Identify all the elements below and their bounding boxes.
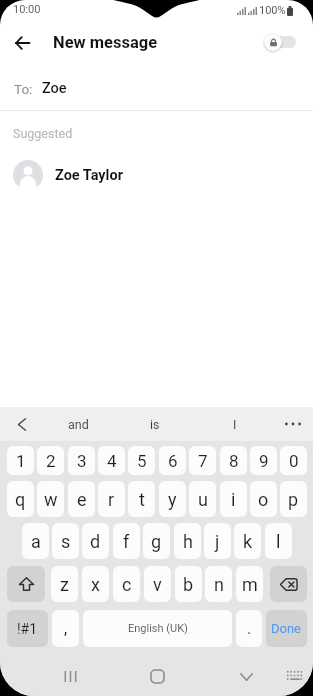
staticText: t [139, 489, 145, 510]
button[interactable]: u [189, 481, 216, 517]
button[interactable]: w [37, 481, 64, 517]
staticText: 2 [46, 451, 56, 471]
button[interactable]: Symbols [7, 610, 48, 647]
button[interactable]: To: [0, 66, 313, 111]
button[interactable]: 5 [128, 446, 155, 475]
staticText: 3 [77, 451, 87, 471]
staticText: s [61, 531, 71, 552]
button[interactable]: e [68, 481, 95, 517]
staticText: I [233, 417, 237, 432]
staticText: m [242, 574, 258, 595]
button[interactable]: 6 [159, 446, 186, 475]
button[interactable]: 3 [68, 446, 95, 475]
button[interactable]: n [205, 566, 232, 602]
button[interactable]: x [82, 566, 109, 602]
button[interactable]: Encryption toggle [263, 32, 297, 52]
staticText: l [276, 531, 281, 552]
button[interactable]: Shift [7, 566, 45, 602]
button[interactable]: p [280, 481, 307, 517]
button[interactable]: Zoe Taylor [0, 155, 313, 195]
button[interactable]: y [159, 481, 186, 517]
staticText: To: [14, 81, 33, 97]
staticText: 4 [107, 451, 117, 471]
staticText: , [64, 619, 68, 638]
button[interactable]: t [128, 481, 155, 517]
button[interactable]: d [82, 523, 109, 559]
staticText: v [153, 574, 162, 595]
staticText: q [15, 489, 26, 510]
button[interactable]: r [98, 481, 125, 517]
staticText: p [288, 489, 299, 510]
staticText: f [123, 531, 130, 552]
staticText: e [77, 489, 87, 510]
button[interactable]: g [143, 523, 170, 559]
button[interactable]: 8 [220, 446, 247, 475]
button[interactable]: More options [281, 412, 305, 436]
staticText: b [183, 574, 194, 595]
staticText: a [31, 531, 41, 552]
staticText: New message [53, 33, 158, 52]
button[interactable]: a [22, 523, 49, 559]
staticText: 5 [137, 451, 147, 471]
button[interactable]: v [144, 566, 171, 602]
staticText: is [150, 417, 160, 432]
staticText: j [215, 531, 220, 552]
button[interactable]: o [250, 481, 277, 517]
button[interactable]: j [204, 523, 231, 559]
staticText: z [60, 574, 69, 595]
button[interactable]: Home [139, 655, 175, 696]
staticText: 6 [168, 451, 178, 471]
button[interactable]: z [51, 566, 78, 602]
button[interactable]: 4 [98, 446, 125, 475]
staticText: 9 [259, 451, 269, 471]
button[interactable]: . [236, 610, 262, 647]
staticText: 7 [198, 451, 208, 471]
button[interactable]: Space [83, 610, 232, 647]
staticText: h [183, 531, 193, 552]
staticText: 1 [16, 451, 26, 471]
button[interactable]: 7 [189, 446, 216, 475]
staticText: and [68, 417, 89, 432]
button[interactable]: q [7, 481, 34, 517]
staticText: . [247, 619, 252, 638]
button[interactable]: s [52, 523, 79, 559]
button[interactable]: Hide keyboard [228, 655, 264, 696]
staticText: 8 [229, 451, 239, 471]
button[interactable]: 2 [37, 446, 64, 475]
staticText: Done [271, 621, 302, 636]
button[interactable]: c [113, 566, 140, 602]
button[interactable]: l [265, 523, 292, 559]
button[interactable]: b [175, 566, 202, 602]
button[interactable]: 9 [250, 446, 277, 475]
button[interactable]: Previous suggestions [10, 412, 34, 436]
staticText: c [122, 574, 132, 595]
staticText: k [243, 531, 253, 552]
staticText: 100% [259, 4, 286, 17]
button[interactable]: Backspace [270, 566, 307, 602]
staticText: x [91, 574, 100, 595]
staticText: Zoe [42, 80, 67, 97]
button[interactable]: is [125, 407, 185, 441]
staticText: Suggested [13, 126, 73, 141]
button[interactable]: m [236, 566, 263, 602]
button[interactable]: 1 [7, 446, 34, 475]
button[interactable]: Switch keyboard [276, 655, 312, 696]
button[interactable]: 0 [280, 446, 307, 475]
staticText: w [44, 489, 58, 510]
button[interactable]: f [113, 523, 140, 559]
staticText: n [214, 574, 224, 595]
staticText: y [168, 489, 177, 510]
button[interactable]: h [174, 523, 201, 559]
button[interactable]: and [48, 407, 108, 441]
button[interactable]: Back [7, 27, 38, 58]
button[interactable]: Done [266, 610, 307, 647]
button[interactable]: Recents [52, 655, 88, 696]
button[interactable]: I [205, 407, 265, 441]
staticText: 10:00 [13, 3, 41, 16]
button[interactable]: , [52, 610, 79, 647]
button[interactable]: i [220, 481, 247, 517]
staticText: r [108, 489, 115, 510]
staticText: 0 [289, 451, 299, 471]
button[interactable]: k [234, 523, 261, 559]
staticText: o [258, 489, 269, 510]
